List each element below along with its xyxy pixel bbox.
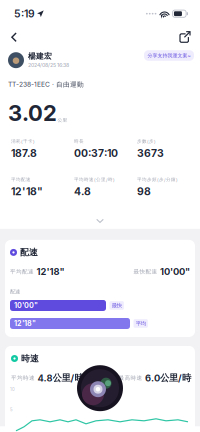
- button[interactable]: 分享支持我運文案~: [144, 50, 194, 61]
- staticText: 最快: [112, 302, 122, 309]
- staticText: 配速: [20, 247, 38, 258]
- staticText: 5: [10, 407, 13, 412]
- button[interactable]: Show more: [75, 213, 125, 229]
- staticText: 平均配速: [11, 177, 31, 182]
- staticText: TT-238-1EEC · 自由運動: [8, 80, 84, 89]
- staticText: 平均時速: [11, 374, 35, 381]
- button[interactable]: Share: [173, 27, 197, 47]
- staticText: 平均: [136, 320, 146, 327]
- staticText: 10: [10, 387, 15, 392]
- staticText: 消耗(千卡): [11, 138, 35, 144]
- button[interactable]: Back: [2, 27, 26, 47]
- staticText: 3673: [137, 147, 164, 160]
- staticText: 5:19: [14, 7, 35, 20]
- staticText: 12'18": [11, 185, 43, 198]
- staticText: 10'00": [14, 301, 38, 310]
- staticText: 00:37:10: [74, 147, 118, 160]
- staticText: 時速: [21, 353, 39, 364]
- staticText: 分享支持我運文案~: [147, 52, 190, 59]
- staticText: 配速: [10, 288, 20, 295]
- staticText: 4.8公里/時: [37, 372, 83, 384]
- staticText: 98: [137, 185, 151, 198]
- staticText: 4.8: [74, 185, 91, 198]
- staticText: 公里: [57, 117, 67, 123]
- staticText: 平均步頻(步/分鐘): [137, 177, 178, 182]
- staticText: 10'00": [160, 266, 190, 277]
- staticText: 6.0公里/時: [145, 372, 191, 384]
- staticText: 12'18": [14, 319, 36, 328]
- staticText: 平均配速: [10, 268, 34, 275]
- staticText: 最高時速: [118, 374, 142, 381]
- staticText: 時長: [74, 138, 84, 144]
- staticText: 最快配速: [133, 268, 157, 275]
- staticText: 12'18": [36, 266, 64, 277]
- staticText: 187.8: [11, 147, 37, 160]
- staticText: 步數(步): [137, 138, 156, 144]
- staticText: 平均時速(公里/時): [74, 177, 115, 182]
- staticText: 楊建宏: [28, 51, 52, 61]
- staticText: 3.02: [8, 100, 57, 126]
- staticText: 2024/08/25 16:38: [28, 62, 69, 68]
